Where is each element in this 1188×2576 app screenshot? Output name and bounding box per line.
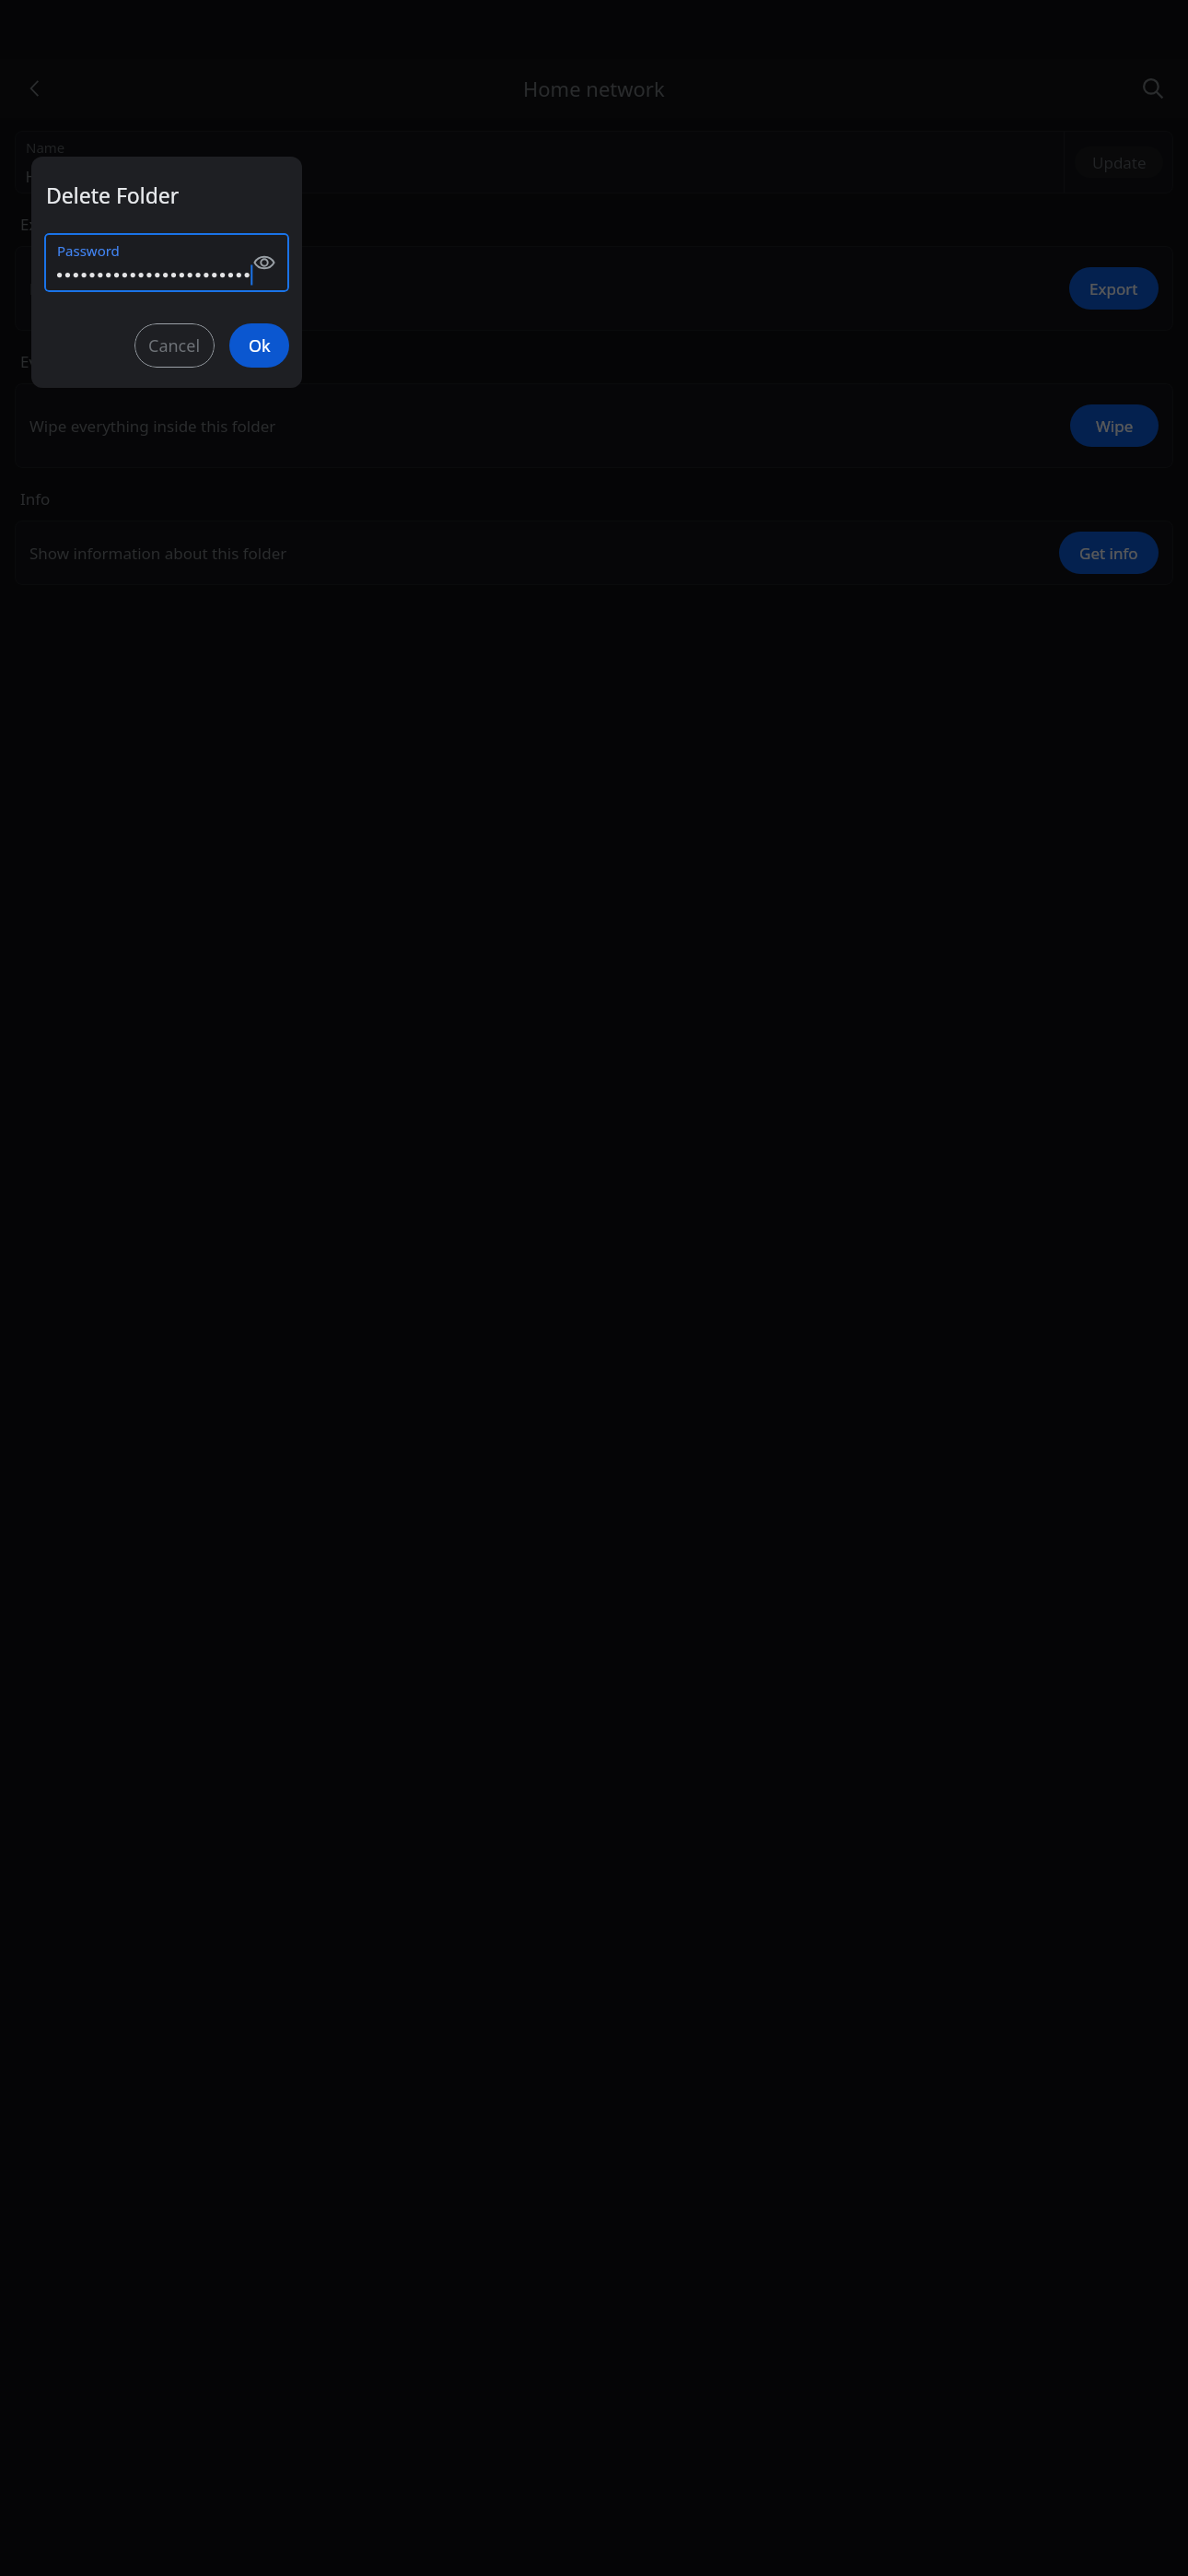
staticText: Export xyxy=(20,214,69,235)
staticText: Home network xyxy=(523,75,665,102)
button[interactable]: Get info xyxy=(1059,532,1159,574)
staticText: Wipe everything inside this folder xyxy=(29,416,1059,437)
staticText: Ok xyxy=(249,334,271,357)
staticText: Home network xyxy=(26,166,139,187)
button[interactable]: Show password xyxy=(247,245,282,280)
staticText: Password xyxy=(57,241,120,260)
staticText: Wipe xyxy=(1096,416,1134,437)
button[interactable]: Password xyxy=(44,233,289,292)
staticText: Get info xyxy=(1079,543,1138,564)
staticText: Export this folder as a file xyxy=(29,278,1058,299)
button[interactable]: Wipe xyxy=(1070,404,1159,447)
button[interactable]: Ok xyxy=(229,323,289,368)
staticText: Show information about this folder xyxy=(29,543,1059,564)
staticText: Export xyxy=(1089,278,1138,299)
staticText: Update xyxy=(1092,152,1147,173)
button[interactable]: Update xyxy=(1075,146,1163,178)
staticText: Delete Folder xyxy=(46,181,180,209)
staticText: Everything xyxy=(20,351,99,372)
staticText: Name xyxy=(26,138,65,157)
staticText: Cancel xyxy=(148,334,201,357)
button[interactable]: Back xyxy=(13,66,57,111)
button[interactable]: Export xyxy=(1069,267,1159,310)
button[interactable]: Search xyxy=(1131,66,1175,111)
button[interactable]: Cancel xyxy=(134,323,215,368)
staticText: Info xyxy=(20,488,51,509)
